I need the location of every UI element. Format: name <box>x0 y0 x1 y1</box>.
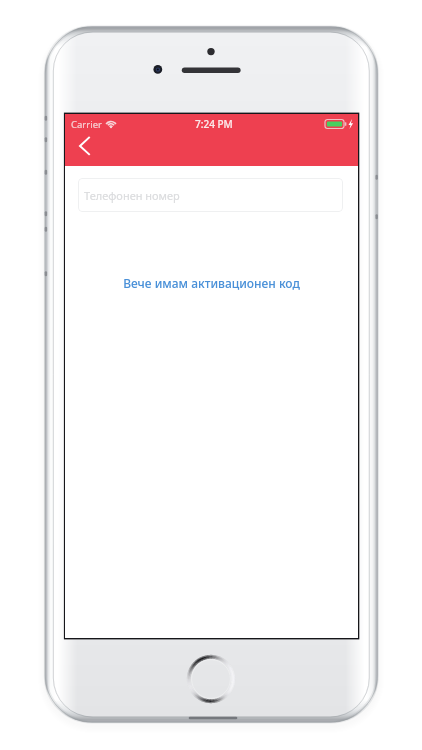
button[interactable]: Back <box>69 134 101 166</box>
button[interactable]: Вече имам активационен код <box>65 272 358 294</box>
staticText: Телефонен номер <box>84 188 180 203</box>
staticText: Вече имам активационен код <box>123 275 300 291</box>
staticText: Carrier <box>71 118 102 131</box>
staticText: 7:24 PM <box>195 117 233 131</box>
button[interactable]: Телефонен номер <box>78 178 343 212</box>
